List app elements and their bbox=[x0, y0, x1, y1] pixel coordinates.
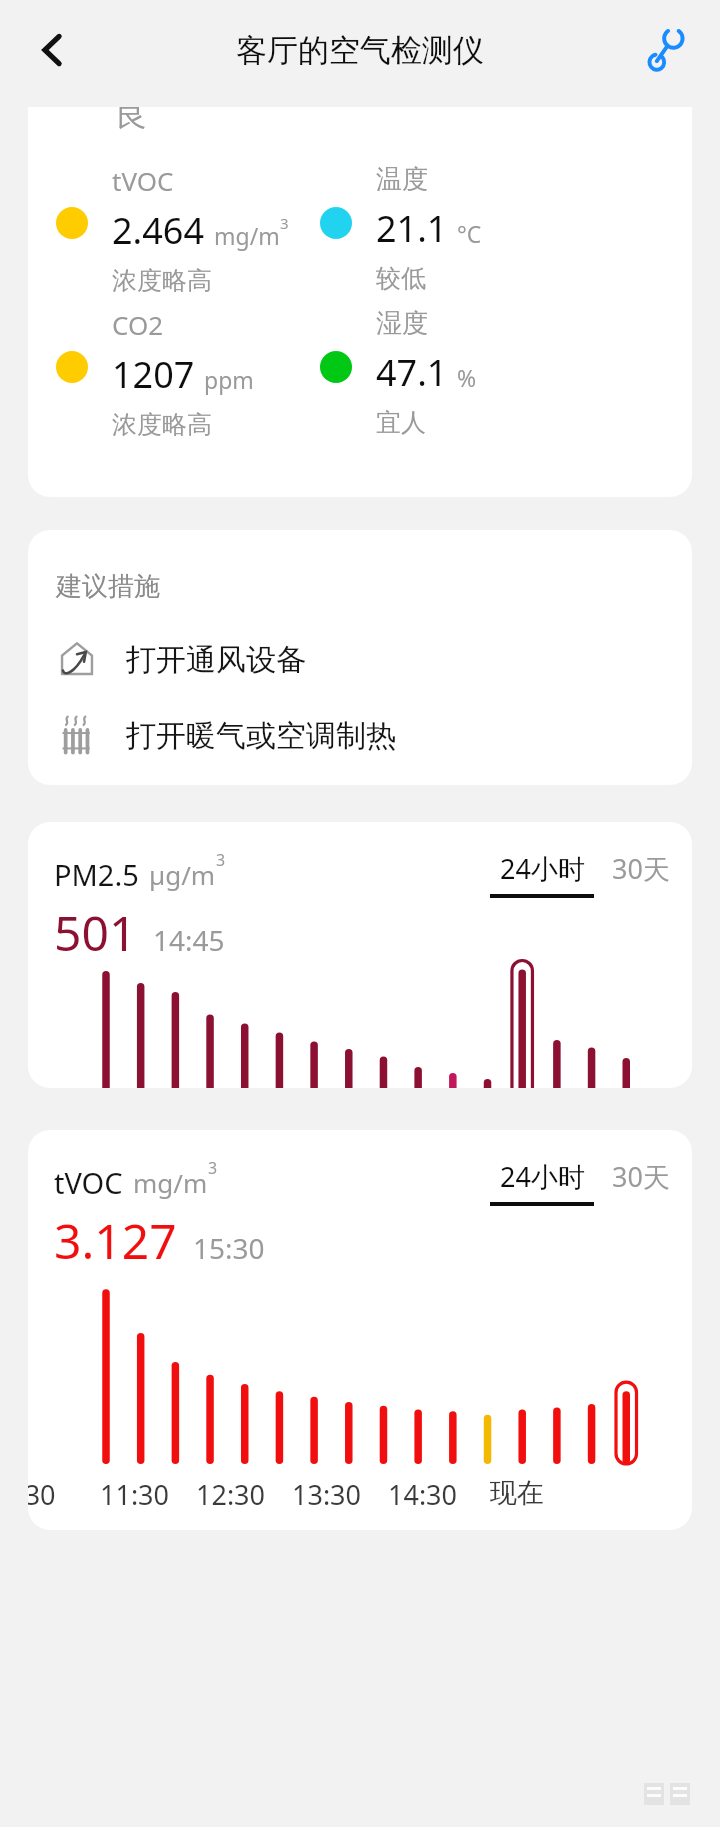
button[interactable]: 打开暖气或空调制热 bbox=[28, 705, 692, 767]
staticText: 1207 bbox=[112, 350, 195, 399]
staticText: °C bbox=[457, 218, 482, 249]
staticText: 47.1 bbox=[376, 348, 448, 397]
staticText: CO2 bbox=[112, 307, 164, 342]
staticText: 30天 bbox=[612, 1158, 670, 1195]
staticText: 较低 bbox=[376, 263, 426, 294]
button[interactable]: Back bbox=[22, 19, 84, 81]
button[interactable]: 温度 bbox=[320, 163, 580, 294]
button[interactable]: tVOC bbox=[56, 163, 316, 296]
button[interactable]: 良 bbox=[28, 107, 692, 497]
staticText: PM2.5 bbox=[54, 855, 139, 894]
staticText: µg/m bbox=[149, 857, 216, 892]
staticText: 11:30 bbox=[100, 1476, 170, 1513]
staticText: 12:30 bbox=[196, 1476, 266, 1513]
button[interactable]: 30天 bbox=[612, 850, 670, 887]
staticText: 打开通风设备 bbox=[126, 641, 306, 679]
staticText: 0:30 bbox=[28, 1476, 56, 1513]
staticText: 30天 bbox=[612, 850, 670, 887]
staticText: 21.1 bbox=[376, 204, 448, 253]
button[interactable]: 24小时 bbox=[490, 1158, 594, 1206]
staticText: 24小时 bbox=[500, 850, 585, 887]
staticText: 3.127 bbox=[54, 1208, 177, 1273]
staticText: 打开暖气或空调制热 bbox=[126, 717, 396, 755]
staticText: 14:45 bbox=[153, 921, 225, 959]
button[interactable]: 打开通风设备 bbox=[28, 629, 692, 691]
staticText: % bbox=[457, 362, 477, 393]
staticText: 温度 bbox=[376, 163, 428, 196]
staticText: 2.464 bbox=[112, 206, 205, 255]
staticText: mg/m bbox=[133, 1165, 208, 1200]
staticText: 现在 bbox=[490, 1476, 544, 1510]
button[interactable]: 湿度 bbox=[320, 307, 580, 438]
button[interactable]: 30天 bbox=[612, 1158, 670, 1195]
staticText: 湿度 bbox=[376, 307, 428, 340]
staticText: 建议措施 bbox=[56, 570, 160, 603]
staticText: ppm bbox=[204, 364, 254, 395]
button[interactable]: CO2 bbox=[56, 307, 316, 440]
staticText: 良 bbox=[114, 107, 147, 135]
staticText: 13:30 bbox=[292, 1476, 362, 1513]
staticText: 501 bbox=[54, 900, 137, 965]
staticText: tVOC bbox=[54, 1163, 123, 1202]
staticText: mg/m bbox=[214, 220, 280, 251]
staticText: 3 bbox=[216, 849, 226, 871]
staticText: 3 bbox=[208, 1157, 218, 1179]
staticText: 浓度略高 bbox=[112, 265, 212, 296]
staticText: 客厅的空气检测仪 bbox=[236, 31, 484, 70]
staticText: 24小时 bbox=[500, 1158, 585, 1195]
staticText: 15:30 bbox=[193, 1229, 265, 1267]
staticText: 3 bbox=[280, 213, 289, 233]
button[interactable]: 24小时 bbox=[490, 850, 594, 898]
staticText: 14:30 bbox=[388, 1476, 458, 1513]
staticText: tVOC bbox=[112, 163, 174, 198]
button[interactable]: Settings bbox=[634, 18, 698, 82]
staticText: 宜人 bbox=[376, 407, 426, 438]
staticText: 浓度略高 bbox=[112, 409, 212, 440]
